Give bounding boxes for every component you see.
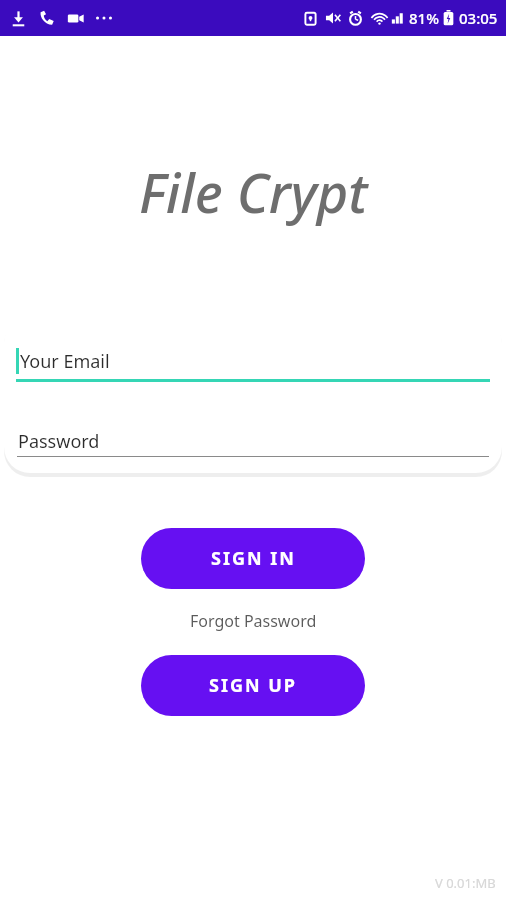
staticText: Your Email [20,349,110,374]
staticText: Password [18,429,100,454]
staticText: 81% [409,8,439,28]
button[interactable]: Your Email [4,343,502,379]
button[interactable]: SIGN UP [141,655,365,716]
staticText: SIGN IN [211,546,296,571]
staticText: V 0.01:MB [435,874,496,892]
button[interactable]: Password [4,426,502,456]
staticText: SIGN UP [209,673,298,698]
staticText: 03:05 [459,8,498,28]
button[interactable]: Forgot Password [182,606,325,636]
staticText: File Crypt [139,155,368,229]
staticText: Forgot Password [190,610,317,632]
button[interactable]: SIGN IN [141,528,365,589]
